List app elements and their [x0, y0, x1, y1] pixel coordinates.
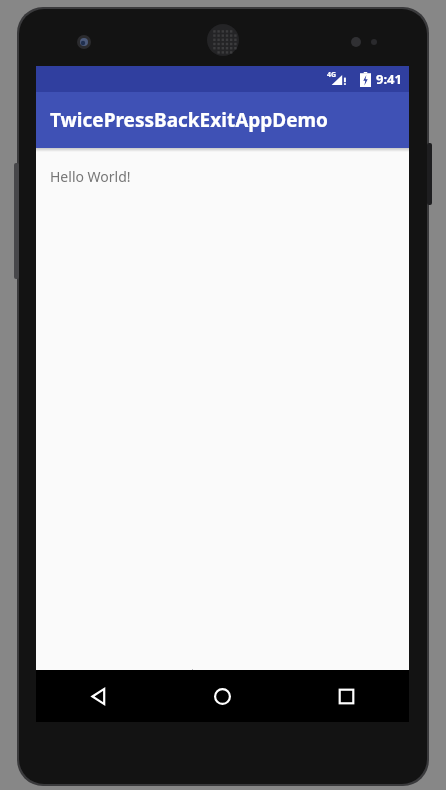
staticText: TwicePressBackExitAppDemo: [50, 107, 328, 133]
button[interactable]: Recent apps: [284, 670, 409, 722]
button[interactable]: Back: [36, 670, 160, 722]
button[interactable]: TwicePressBackExitAppDemo: [36, 92, 409, 148]
staticText: 4G: [327, 70, 337, 80]
staticText: Hello World!: [50, 167, 131, 186]
staticText: 9:41: [376, 70, 402, 88]
button[interactable]: Home: [160, 670, 284, 722]
